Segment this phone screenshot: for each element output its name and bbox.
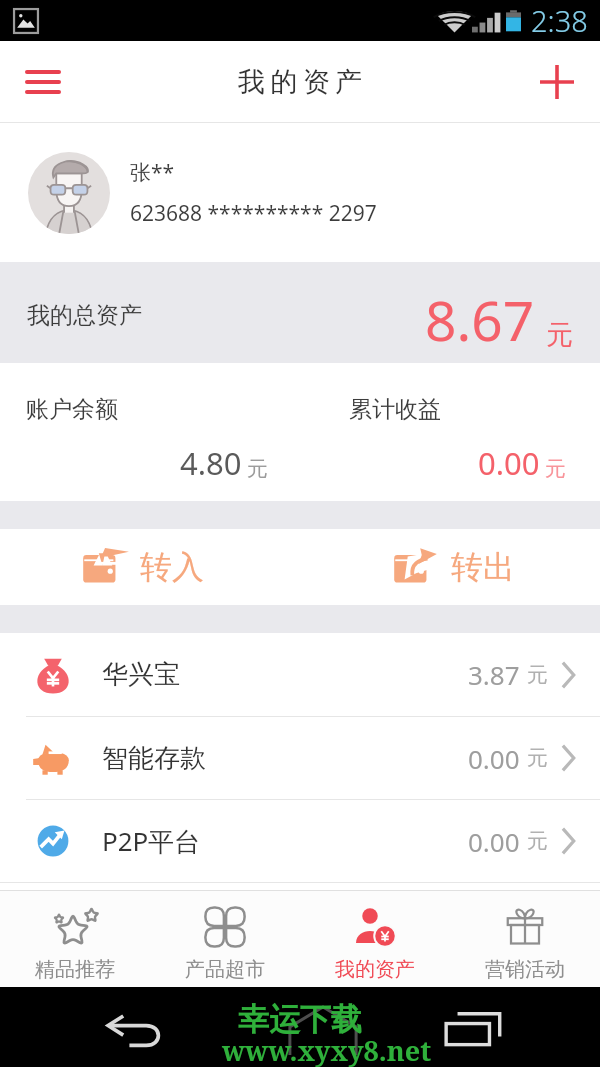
- staticText: 元: [527, 828, 548, 854]
- staticText: 0.00: [478, 442, 540, 484]
- button[interactable]: 精品推荐: [0, 891, 150, 987]
- staticText: P2P平台: [102, 823, 201, 859]
- staticText: 累计收益: [349, 395, 441, 424]
- staticText: 元: [247, 456, 268, 482]
- staticText: 幸运下载: [238, 1000, 362, 1039]
- button[interactable]: Recents: [438, 994, 508, 1064]
- button[interactable]: Menu: [0, 41, 86, 122]
- button[interactable]: 我的资产: [300, 891, 450, 987]
- staticText: 我的资产: [235, 65, 365, 99]
- staticText: 转入: [140, 547, 204, 587]
- staticText: 0.00: [468, 741, 520, 776]
- staticText: 3.87: [468, 657, 520, 692]
- staticText: 我的资产: [335, 957, 415, 982]
- button[interactable]: 转出: [300, 529, 600, 605]
- button[interactable]: 转入: [0, 529, 300, 605]
- button[interactable]: P2P平台: [0, 800, 600, 882]
- staticText: 8.67: [425, 282, 535, 357]
- staticText: 华兴宝: [102, 658, 180, 691]
- staticText: 账户余额: [26, 395, 118, 424]
- staticText: 0.00: [468, 824, 520, 859]
- staticText: www.xyxy8.net: [222, 1032, 432, 1067]
- button[interactable]: 营销活动: [450, 891, 600, 987]
- button[interactable]: 张**: [0, 123, 600, 262]
- staticText: 4.80: [180, 442, 242, 484]
- staticText: 产品超市: [185, 957, 265, 982]
- staticText: 精品推荐: [35, 957, 115, 982]
- button[interactable]: Add: [514, 41, 600, 122]
- staticText: 623688 ********** 2297: [130, 199, 377, 228]
- staticText: 元: [527, 745, 548, 771]
- staticText: 转出: [451, 547, 515, 587]
- button[interactable]: Back: [100, 996, 170, 1066]
- staticText: 我的总资产: [27, 301, 142, 330]
- button[interactable]: 智能存款: [0, 717, 600, 799]
- staticText: 元: [527, 662, 548, 688]
- staticText: 2:38: [531, 1, 588, 40]
- staticText: 营销活动: [485, 957, 565, 982]
- staticText: 张**: [130, 158, 175, 187]
- button[interactable]: 产品超市: [150, 891, 300, 987]
- staticText: 元: [545, 456, 566, 482]
- staticText: 元: [546, 318, 573, 352]
- staticText: 智能存款: [102, 742, 206, 775]
- button[interactable]: 华兴宝: [0, 633, 600, 716]
